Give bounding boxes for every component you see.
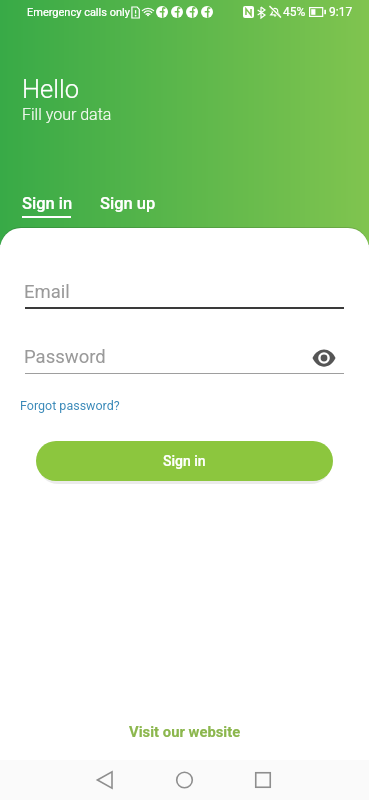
button[interactable]: Sign in: [36, 441, 333, 481]
button[interactable]: Recents: [243, 760, 283, 800]
staticText: Visit our website: [129, 723, 241, 740]
staticText: Password: [24, 346, 106, 368]
staticText: 45%: [283, 5, 306, 19]
staticText: Sign in: [22, 194, 73, 213]
staticText: Hello: [22, 74, 79, 104]
staticText: Emergency calls only: [27, 6, 130, 19]
button[interactable]: Show password: [310, 344, 338, 372]
button[interactable]: Back: [85, 760, 125, 800]
button[interactable]: Forgot password?: [20, 398, 120, 413]
staticText: Fill your data: [22, 105, 112, 124]
staticText: Sign in: [163, 453, 206, 469]
button[interactable]: Visit our website: [0, 718, 369, 744]
button[interactable]: Home: [164, 760, 204, 800]
staticText: Sign up: [100, 194, 156, 213]
button[interactable]: Sign in: [22, 194, 73, 218]
staticText: 9:17: [329, 5, 353, 19]
staticText: Email: [24, 281, 70, 303]
button[interactable]: Sign up: [100, 194, 156, 213]
staticText: Forgot password?: [20, 398, 120, 413]
